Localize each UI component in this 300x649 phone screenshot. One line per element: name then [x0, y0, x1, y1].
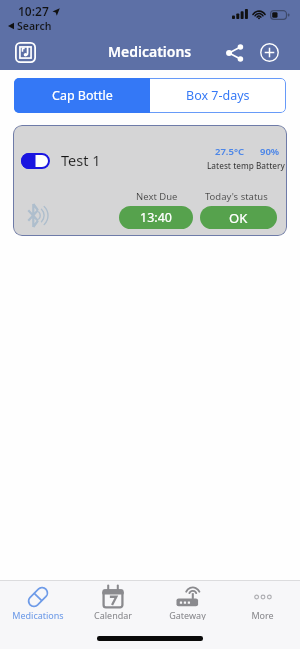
- staticText: 10:27: [18, 3, 49, 19]
- staticText: 27.5°C: [215, 145, 245, 158]
- staticText: Search: [17, 19, 52, 33]
- staticText: 13:40: [140, 209, 172, 226]
- button[interactable]: Add medication: [259, 42, 279, 62]
- staticText: Test 1: [61, 150, 101, 170]
- button[interactable]: Share: [225, 43, 244, 62]
- button[interactable]: Cap Bottle: [14, 78, 150, 113]
- button[interactable]: OK: [200, 206, 277, 229]
- button[interactable]: Open menu: [15, 42, 36, 63]
- staticText: Cap Bottle: [52, 87, 113, 104]
- staticText: OK: [229, 209, 248, 227]
- button[interactable]: Medications: [0, 581, 75, 620]
- staticText: Medications: [12, 609, 64, 620]
- staticText: Calendar: [94, 609, 132, 620]
- staticText: Next Due: [136, 190, 178, 203]
- button[interactable]: More: [225, 581, 300, 620]
- staticText: 90%: [260, 145, 280, 158]
- staticText: Medications: [108, 42, 192, 61]
- staticText: Gateway: [169, 609, 206, 620]
- button[interactable]: Gateway: [150, 581, 225, 620]
- staticText: More: [251, 609, 274, 620]
- button[interactable]: Test 1: [13, 125, 287, 236]
- staticText: Today's status: [205, 190, 268, 203]
- staticText: Battery: [256, 160, 285, 171]
- staticText: Latest temp: [207, 160, 254, 171]
- button[interactable]: Box 7-days: [150, 78, 286, 113]
- button[interactable]: 13:40: [119, 206, 193, 229]
- staticText: Box 7-days: [186, 87, 250, 104]
- button[interactable]: Calendar: [75, 581, 150, 620]
